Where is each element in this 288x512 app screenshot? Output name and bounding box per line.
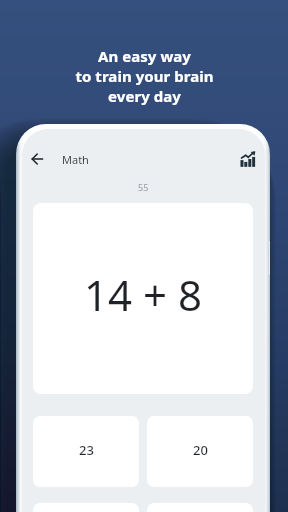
button[interactable]: 14 + 8 <box>33 203 253 394</box>
staticText: 20 <box>193 441 208 459</box>
staticText: An easy way to train your brain every da… <box>75 46 214 106</box>
staticText: Math <box>62 152 89 167</box>
staticText: 14 + 8 <box>84 266 202 323</box>
button[interactable]: 20 <box>147 416 253 487</box>
button[interactable]: 23 <box>33 416 139 487</box>
staticText: 55 <box>138 181 149 193</box>
staticText: 23 <box>79 441 94 459</box>
button[interactable]: Statistics <box>231 142 265 176</box>
button[interactable]: Back <box>22 141 51 177</box>
